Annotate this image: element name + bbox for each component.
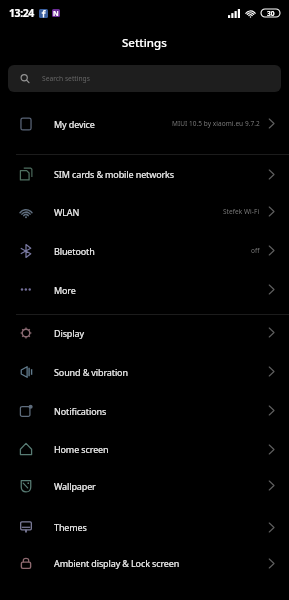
staticText: Sound & vibration (54, 366, 128, 378)
staticText: MIUI 10.5 by xiaomi.eu 9.7.2 (172, 119, 260, 128)
button[interactable]: Display (0, 313, 289, 352)
staticText: Stefek Wi-Fi (223, 207, 260, 216)
staticText: My device (54, 118, 95, 130)
staticText: Search settings (42, 74, 90, 83)
button[interactable]: Bluetooth (0, 231, 289, 270)
button[interactable]: WLAN (0, 192, 289, 231)
staticText: 30 (267, 9, 275, 17)
staticText: Wallpaper (54, 480, 96, 492)
staticText: Notifications (54, 405, 107, 417)
button[interactable]: Home screen (0, 430, 289, 468)
staticText: off (251, 246, 260, 255)
staticText: Settings (122, 35, 167, 51)
button[interactable]: More (0, 270, 289, 309)
button[interactable]: SIM cards & mobile networks (0, 155, 289, 193)
button[interactable]: Notifications (0, 391, 289, 430)
staticText: Display (54, 327, 84, 339)
staticText: Ambient display & Lock screen (54, 557, 180, 569)
staticText: N (53, 9, 59, 17)
staticText: More (54, 284, 76, 296)
staticText: WLAN (54, 206, 80, 218)
button[interactable]: My device (0, 104, 289, 143)
staticText: Home screen (54, 443, 109, 455)
button[interactable]: Ambient display & Lock screen (0, 544, 289, 582)
staticText: SIM cards & mobile networks (54, 168, 174, 180)
button[interactable]: Sound & vibration (0, 352, 289, 391)
staticText: 13:24 (9, 6, 34, 20)
staticText: Bluetooth (54, 245, 95, 257)
staticText: Themes (54, 521, 87, 533)
button[interactable]: Themes (0, 508, 289, 546)
button[interactable]: Wallpaper (0, 466, 289, 505)
button[interactable]: Search settings (8, 65, 281, 92)
